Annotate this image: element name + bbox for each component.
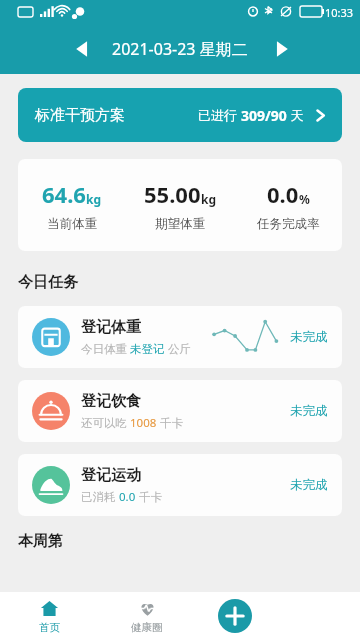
staticText: kg [201, 191, 217, 207]
staticText: 0.0 [119, 489, 136, 505]
button[interactable]: 登记体重 [18, 306, 342, 368]
button[interactable]: Previous day [66, 32, 100, 66]
staticText: 今日任务 [18, 273, 78, 292]
staticText: 本周第 [18, 532, 63, 551]
button[interactable]: Add [218, 599, 252, 633]
staticText: % [299, 191, 310, 207]
staticText: 未登记 [130, 342, 165, 356]
staticText: 未完成 [290, 403, 328, 419]
staticText: 0.0 [267, 179, 299, 209]
button[interactable]: 登记饮食 [18, 380, 342, 442]
staticText: 今日体重 [81, 341, 130, 357]
staticText: 未完成 [290, 477, 328, 493]
staticText: 千卡 [157, 415, 183, 431]
staticText: 健康圈 [131, 621, 163, 634]
staticText: 已消耗 [81, 489, 119, 505]
staticText: 任务完成率 [257, 216, 320, 232]
button[interactable]: Next day [264, 32, 298, 66]
staticText: 还可以吃 [81, 415, 130, 431]
staticText: 未完成 [290, 329, 328, 345]
staticText: 首页 [39, 621, 60, 634]
staticText: 64.6 [42, 179, 86, 209]
staticText: 10:33 [325, 5, 354, 20]
staticText: 登记运动 [81, 466, 141, 485]
staticText: 公斤 [165, 341, 191, 357]
staticText: kg [86, 191, 102, 207]
staticText: 登记体重 [81, 318, 141, 337]
staticText: 55.00 [144, 179, 201, 209]
staticText: 2021-03-23 星期二 [112, 38, 248, 60]
staticText: 登记饮食 [81, 392, 141, 411]
staticText: 当前体重 [47, 216, 97, 232]
button[interactable]: 64.6 [18, 159, 342, 251]
staticText: 期望体重 [155, 216, 205, 232]
staticText: 千卡 [136, 489, 162, 505]
staticText: 天 [287, 106, 304, 124]
staticText: 标准干预方案 [35, 106, 125, 125]
staticText: 309/90 [241, 106, 287, 125]
staticText: 1008 [130, 415, 157, 431]
button[interactable]: 首页 [0, 592, 98, 640]
button[interactable]: 健康圈 [98, 592, 196, 640]
staticText: 已进行 [198, 106, 241, 124]
button[interactable]: 标准干预方案 [18, 88, 342, 142]
button[interactable]: 登记运动 [18, 454, 342, 516]
